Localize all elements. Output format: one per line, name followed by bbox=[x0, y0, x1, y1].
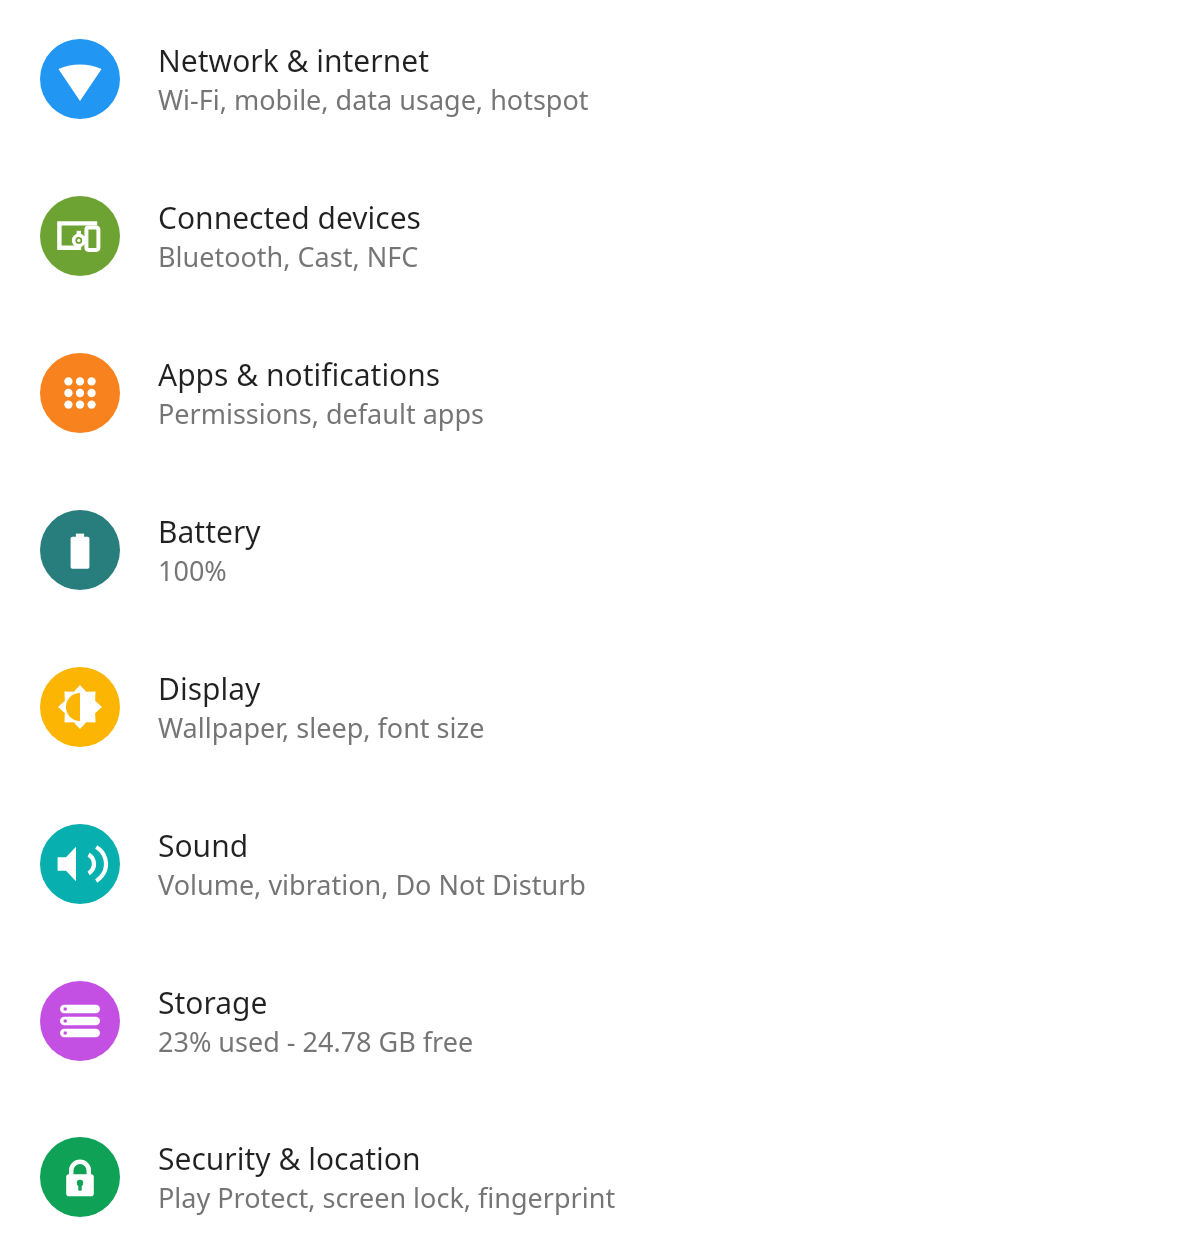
button[interactable]: Connected devices bbox=[0, 157, 1200, 314]
other: Battery bbox=[40, 510, 120, 590]
other: Security & location bbox=[40, 1137, 120, 1217]
staticText: Battery bbox=[158, 511, 261, 552]
staticText: Wi-Fi, mobile, data usage, hotspot bbox=[158, 81, 589, 118]
button[interactable]: Display bbox=[0, 628, 1200, 785]
other: Sound bbox=[40, 824, 120, 904]
button[interactable]: Apps & notifications bbox=[0, 314, 1200, 471]
other: Connected devices bbox=[40, 196, 120, 276]
other: Storage bbox=[40, 981, 120, 1061]
staticText: 23% used - 24.78 GB free bbox=[158, 1023, 474, 1060]
button[interactable]: Security & location bbox=[0, 1099, 1200, 1255]
staticText: Volume, vibration, Do Not Disturb bbox=[158, 866, 586, 903]
other: Apps & notifications bbox=[40, 353, 120, 433]
staticText: Permissions, default apps bbox=[158, 395, 484, 432]
other: Display bbox=[40, 667, 120, 747]
staticText: Wallpaper, sleep, font size bbox=[158, 709, 485, 746]
staticText: Bluetooth, Cast, NFC bbox=[158, 238, 419, 275]
button[interactable]: Network & internet bbox=[0, 0, 1200, 157]
staticText: Storage bbox=[158, 982, 268, 1023]
button[interactable]: Sound bbox=[0, 785, 1200, 942]
staticText: Connected devices bbox=[158, 197, 421, 238]
staticText: Security & location bbox=[158, 1138, 421, 1179]
staticText: Network & internet bbox=[158, 40, 429, 81]
staticText: Sound bbox=[158, 825, 249, 866]
staticText: Apps & notifications bbox=[158, 354, 441, 395]
other: Network & internet bbox=[40, 39, 120, 119]
staticText: 100% bbox=[158, 552, 227, 589]
button[interactable]: Storage bbox=[0, 942, 1200, 1099]
button[interactable]: Battery bbox=[0, 471, 1200, 628]
staticText: Display bbox=[158, 668, 261, 709]
staticText: Play Protect, screen lock, fingerprint bbox=[158, 1179, 616, 1216]
